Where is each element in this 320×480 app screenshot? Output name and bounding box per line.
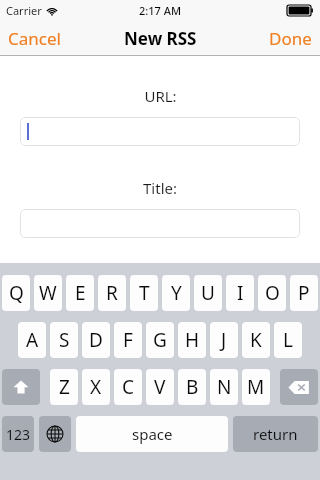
button[interactable]: W: [34, 275, 62, 311]
button[interactable]: [20, 209, 300, 238]
button[interactable]: Q: [2, 275, 30, 311]
staticText: J: [221, 327, 227, 353]
staticText: URL:: [144, 86, 177, 106]
staticText: L: [283, 327, 293, 353]
button[interactable]: [20, 117, 300, 146]
staticText: A: [26, 327, 39, 353]
staticText: F: [123, 327, 133, 353]
button[interactable]: Done: [269, 20, 312, 56]
staticText: return: [253, 424, 298, 444]
staticText: T: [139, 280, 150, 306]
staticText: N: [217, 374, 232, 400]
button[interactable]: space: [76, 416, 228, 452]
staticText: O: [265, 280, 280, 306]
staticText: Y: [171, 280, 182, 306]
button[interactable]: Backspace: [280, 369, 318, 405]
staticText: space: [132, 424, 173, 444]
button[interactable]: I: [226, 275, 254, 311]
button[interactable]: Shift: [2, 369, 40, 405]
staticText: B: [186, 374, 199, 400]
button[interactable]: G: [146, 322, 174, 358]
button[interactable]: Z: [50, 369, 78, 405]
button[interactable]: N: [210, 369, 238, 405]
button[interactable]: D: [82, 322, 110, 358]
button[interactable]: T: [130, 275, 158, 311]
button[interactable]: 123: [2, 416, 34, 452]
staticText: New RSS: [124, 27, 197, 50]
button[interactable]: B: [178, 369, 206, 405]
staticText: Carrier: [6, 3, 42, 18]
button[interactable]: C: [114, 369, 142, 405]
staticText: U: [201, 280, 215, 306]
staticText: X: [90, 374, 102, 400]
button[interactable]: R: [98, 275, 126, 311]
staticText: Cancel: [8, 27, 61, 50]
staticText: P: [298, 280, 310, 306]
button[interactable]: return: [233, 416, 318, 452]
button[interactable]: E: [66, 275, 94, 311]
button[interactable]: X: [82, 369, 110, 405]
button[interactable]: M: [242, 369, 270, 405]
staticText: Done: [269, 27, 312, 50]
staticText: V: [154, 374, 166, 400]
button[interactable]: A: [18, 322, 46, 358]
button[interactable]: L: [274, 322, 302, 358]
button[interactable]: O: [258, 275, 286, 311]
button[interactable]: Y: [162, 275, 190, 311]
staticText: 123: [6, 425, 31, 444]
staticText: I: [237, 280, 244, 306]
staticText: S: [59, 327, 70, 353]
staticText: R: [106, 280, 118, 306]
button[interactable]: S: [50, 322, 78, 358]
staticText: K: [250, 327, 262, 353]
staticText: Q: [9, 280, 24, 306]
staticText: M: [247, 374, 265, 400]
button[interactable]: H: [178, 322, 206, 358]
staticText: E: [75, 280, 86, 306]
staticText: 2:17 AM: [139, 3, 182, 18]
button[interactable]: F: [114, 322, 142, 358]
staticText: H: [185, 327, 200, 353]
button[interactable]: U: [194, 275, 222, 311]
staticText: Z: [59, 374, 70, 400]
staticText: C: [122, 374, 135, 400]
staticText: G: [153, 327, 167, 353]
staticText: W: [39, 280, 57, 306]
button[interactable]: K: [242, 322, 270, 358]
staticText: Title:: [143, 178, 177, 198]
button[interactable]: V: [146, 369, 174, 405]
button[interactable]: Switch keyboard: [39, 416, 71, 452]
button[interactable]: Cancel: [8, 20, 61, 56]
button[interactable]: J: [210, 322, 238, 358]
staticText: D: [89, 327, 103, 353]
button[interactable]: P: [290, 275, 318, 311]
